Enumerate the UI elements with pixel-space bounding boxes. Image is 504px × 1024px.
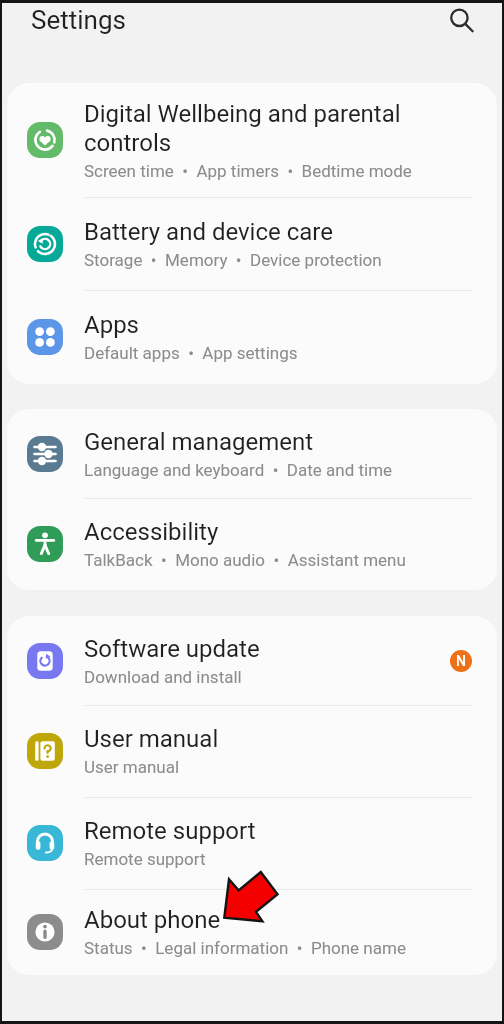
button[interactable]: Accessibility (7, 498, 497, 590)
button[interactable]: Remote support (7, 797, 497, 889)
button[interactable]: Apps (7, 290, 497, 384)
staticText: Accessibility (84, 518, 219, 546)
staticText: General management (84, 428, 314, 456)
staticText: Screen time • App timers • Bedtime mode (84, 161, 412, 181)
staticText: Storage • Memory • Device protection (84, 250, 382, 270)
staticText: Battery and device care (84, 218, 333, 246)
staticText: Digital Wellbeing and parental controls (84, 100, 401, 157)
staticText: Remote support (84, 849, 206, 869)
staticText: User manual (84, 757, 180, 777)
button[interactable]: User manual (7, 705, 497, 797)
staticText: Status • Legal information • Phone name (84, 938, 406, 958)
staticText: TalkBack • Mono audio • Assistant menu (84, 550, 406, 570)
staticText: About phone (84, 906, 221, 934)
button[interactable]: General management (7, 409, 497, 498)
staticText: Language and keyboard • Date and time (84, 460, 393, 480)
button[interactable] (444, 2, 478, 36)
button[interactable]: Battery and device care (7, 197, 497, 290)
staticText: N (456, 653, 466, 669)
button[interactable]: About phone (7, 889, 497, 975)
staticText: User manual (84, 725, 219, 753)
staticText: Software update (84, 635, 260, 663)
staticText: Settings (31, 5, 126, 35)
button[interactable]: Digital Wellbeing and parental controls (7, 83, 497, 197)
button[interactable]: Software update (7, 616, 497, 705)
staticText: Apps (84, 311, 139, 339)
staticText: Remote support (84, 817, 256, 845)
staticText: Download and install (84, 667, 242, 687)
staticText: Default apps • App settings (84, 343, 298, 363)
